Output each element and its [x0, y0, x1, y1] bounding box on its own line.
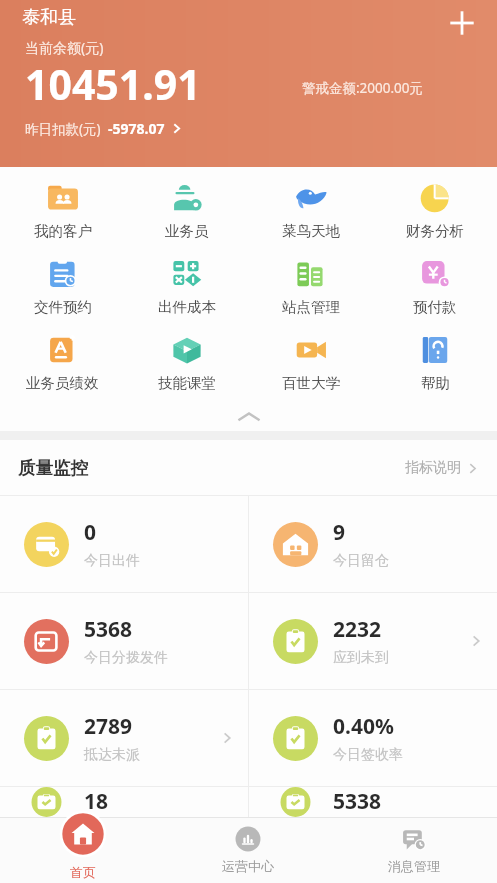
staticText: 预付款: [413, 298, 457, 316]
staticText: 百世大学: [282, 374, 340, 392]
button[interactable]: 2789: [0, 690, 248, 786]
button[interactable]: 站点管理: [249, 251, 373, 327]
staticText: 今日签收率: [333, 746, 403, 764]
staticText: 当前余额(元): [25, 38, 104, 57]
staticText: 抵达未派: [84, 746, 140, 764]
button[interactable]: 运营中心: [165, 817, 331, 883]
button[interactable]: 18: [0, 787, 248, 817]
button[interactable]: 5338: [249, 787, 497, 817]
staticText: 业务员: [165, 222, 209, 240]
staticText: 技能课堂: [158, 374, 216, 392]
button[interactable]: 2232: [249, 593, 497, 689]
button[interactable]: 9: [249, 496, 497, 592]
staticText: 今日留仓: [333, 552, 389, 570]
button[interactable]: 昨日扣款(元): [25, 119, 183, 138]
staticText: 指标说明: [405, 459, 461, 477]
staticText: 2789: [84, 712, 133, 741]
button[interactable]: 0.40%: [249, 690, 497, 786]
staticText: 站点管理: [282, 298, 340, 316]
staticText: 2232: [333, 615, 382, 644]
button[interactable]: Add: [441, 2, 483, 44]
button[interactable]: 业务员绩效: [0, 327, 125, 403]
staticText: 出件成本: [158, 298, 216, 316]
staticText: -5978.07: [108, 119, 165, 138]
button[interactable]: 5368: [0, 593, 248, 689]
staticText: 泰和县: [22, 6, 76, 29]
button[interactable]: 消息管理: [331, 817, 497, 883]
staticText: 昨日扣款(元): [25, 120, 101, 138]
staticText: 10451.91: [25, 56, 201, 112]
button[interactable]: Collapse: [0, 403, 497, 431]
staticText: 财务分析: [406, 222, 464, 240]
button[interactable]: 百世大学: [249, 327, 373, 403]
staticText: 今日出件: [84, 552, 140, 570]
button[interactable]: 出件成本: [125, 251, 249, 327]
button[interactable]: 菜鸟天地: [249, 175, 373, 251]
staticText: 0: [84, 518, 97, 547]
staticText: 菜鸟天地: [282, 222, 340, 240]
button[interactable]: 技能课堂: [125, 327, 249, 403]
staticText: 消息管理: [388, 858, 440, 874]
button[interactable]: 交件预约: [0, 251, 125, 327]
button[interactable]: 指标说明: [405, 459, 479, 477]
staticText: 警戒金额:2000.00元: [302, 79, 424, 97]
staticText: 交件预约: [34, 298, 92, 316]
staticText: 18: [84, 787, 109, 816]
staticText: 运营中心: [222, 858, 274, 874]
staticText: 今日分拨发件: [84, 649, 168, 667]
staticText: 帮助: [421, 374, 450, 392]
staticText: 5338: [333, 787, 382, 816]
button[interactable]: 帮助: [373, 327, 497, 403]
staticText: 应到未到: [333, 649, 389, 667]
button[interactable]: 预付款: [373, 251, 497, 327]
button[interactable]: 首页: [0, 817, 165, 883]
staticText: 业务员绩效: [26, 374, 99, 392]
staticText: 5368: [84, 615, 133, 644]
button[interactable]: 财务分析: [373, 175, 497, 251]
staticText: 首页: [70, 864, 96, 880]
staticText: 9: [333, 518, 346, 547]
button[interactable]: 0: [0, 496, 248, 592]
staticText: 我的客户: [34, 222, 92, 240]
button[interactable]: 我的客户: [0, 175, 125, 251]
staticText: 0.40%: [333, 712, 394, 741]
staticText: 质量监控: [18, 457, 88, 479]
button[interactable]: 业务员: [125, 175, 249, 251]
